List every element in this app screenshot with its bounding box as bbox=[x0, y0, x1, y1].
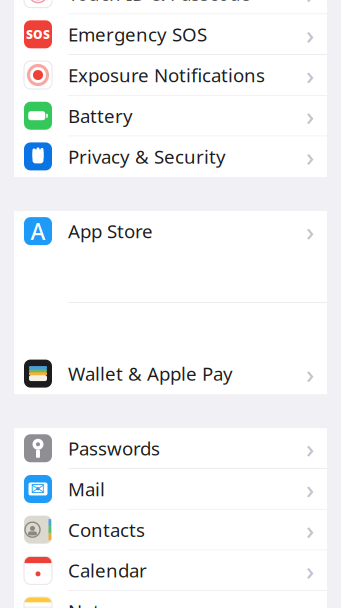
staticText: Wallet & Apple Pay bbox=[68, 361, 233, 386]
button[interactable]: Privacy & Security bbox=[14, 136, 327, 177]
staticText: A bbox=[30, 216, 45, 246]
staticText: Contacts bbox=[68, 517, 145, 542]
staticText: › bbox=[306, 214, 314, 248]
button[interactable]: Passwords bbox=[14, 428, 327, 469]
button[interactable]: ✉ bbox=[14, 469, 327, 510]
staticText: › bbox=[306, 554, 314, 587]
staticText: › bbox=[306, 0, 314, 10]
staticText: Calendar bbox=[68, 558, 147, 583]
staticText: › bbox=[306, 58, 314, 92]
button[interactable]: Calendar bbox=[14, 550, 327, 591]
staticText: › bbox=[306, 513, 314, 546]
button[interactable]: Exposure Notifications bbox=[14, 55, 327, 96]
staticText: ✉ bbox=[30, 479, 45, 499]
staticText: › bbox=[306, 357, 314, 390]
button[interactable]: Battery bbox=[14, 96, 327, 136]
staticText: Battery bbox=[68, 103, 133, 128]
staticText: › bbox=[306, 99, 314, 132]
staticText: › bbox=[306, 17, 314, 51]
staticText: › bbox=[306, 472, 314, 506]
button[interactable]: Contacts bbox=[14, 510, 327, 550]
staticText: Passwords bbox=[68, 436, 160, 461]
staticText: App Store bbox=[68, 219, 153, 243]
staticText: Touch ID & Passcode bbox=[68, 0, 251, 6]
staticText: Mail bbox=[68, 477, 105, 501]
staticText: Emergency SOS bbox=[68, 22, 207, 47]
staticText: › bbox=[306, 431, 314, 465]
button[interactable]: Touch ID & Passcode bbox=[14, 0, 327, 14]
button[interactable]: Wallet & Apple Pay bbox=[14, 354, 327, 394]
staticText: Exposure Notifications bbox=[68, 63, 265, 87]
staticText: › bbox=[306, 140, 314, 173]
staticText: SOS bbox=[26, 26, 50, 42]
button[interactable]: A bbox=[14, 211, 327, 354]
button[interactable]: Notes bbox=[14, 591, 327, 608]
staticText: Privacy & Security bbox=[68, 144, 226, 169]
staticText: Notes bbox=[68, 599, 120, 608]
button[interactable]: SOS bbox=[14, 14, 327, 55]
